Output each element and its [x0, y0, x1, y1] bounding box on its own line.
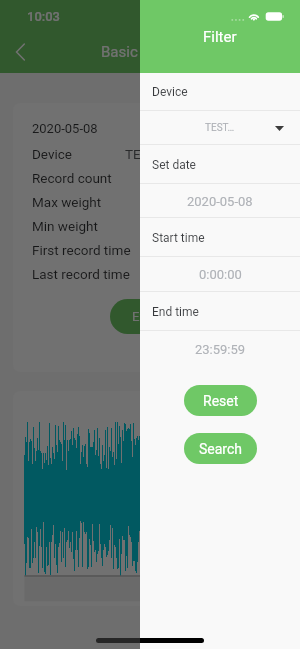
button[interactable]: TEST… — [140, 111, 300, 145]
button[interactable]: Search — [184, 433, 257, 464]
staticText: Filter — [203, 28, 237, 46]
staticText: 10:03 — [27, 9, 61, 24]
staticText: Basic statistics — [101, 43, 203, 61]
staticText: First record time — [32, 242, 131, 258]
button[interactable] — [0, 0, 300, 649]
staticText: Export — [132, 309, 170, 324]
staticText: 99.80 — [222, 194, 256, 210]
button[interactable]: Export — [110, 299, 192, 334]
button[interactable]: Device — [140, 73, 300, 111]
staticText: 00:00:03 — [222, 242, 275, 258]
button[interactable]: End time — [140, 292, 300, 331]
staticText: End time — [152, 305, 199, 319]
button[interactable]: 23:59:59 — [140, 331, 300, 368]
staticText: TEST… — [205, 122, 235, 134]
staticText: 23:59:59 — [195, 342, 246, 357]
staticText: 4096 — [222, 170, 253, 186]
button[interactable]: 2020-05-08 — [140, 184, 300, 218]
staticText: Max weight — [32, 194, 102, 210]
staticText: 0:00:00 — [199, 267, 242, 282]
staticText: 2020-05-08 — [187, 194, 253, 209]
button[interactable]: Set date — [140, 145, 300, 184]
button[interactable]: Reset — [184, 385, 257, 416]
staticText: Device — [152, 85, 188, 99]
staticText: Min weight — [32, 218, 98, 234]
staticText: TEST-DEVICE-0427 — [125, 146, 239, 162]
button[interactable]: 0:00:00 — [140, 257, 300, 292]
button[interactable]: Back — [7, 39, 33, 65]
staticText: Last record time — [32, 266, 130, 282]
staticText: Record count — [32, 170, 112, 186]
staticText: Start time — [152, 231, 205, 245]
staticText: Device — [32, 146, 72, 162]
staticText: Search — [199, 441, 243, 457]
staticText: 2020-05-08 — [32, 121, 98, 136]
staticText: 23:59:48 — [222, 266, 275, 282]
button[interactable]: Start time — [140, 218, 300, 257]
staticText: Reset — [203, 393, 239, 409]
staticText: Set date — [152, 158, 196, 172]
